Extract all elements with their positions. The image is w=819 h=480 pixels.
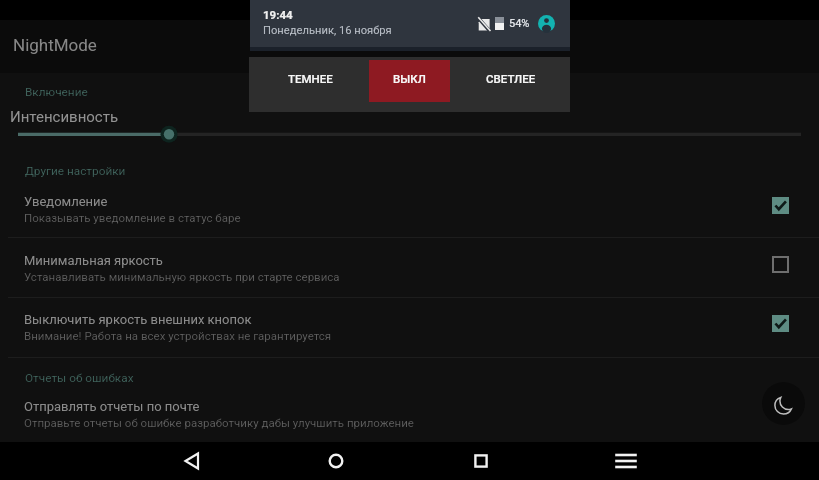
- staticText: 54%: [509, 17, 530, 30]
- staticText: Выключить яркость внешних кнопок: [24, 312, 252, 327]
- button[interactable]: Home: [317, 442, 355, 480]
- staticText: Отправьте отчеты об ошибке разработчику …: [24, 416, 414, 429]
- staticText: Внимание! Работа на всех устройствах не …: [24, 329, 332, 342]
- staticText: ТЕМНЕЕ: [288, 72, 333, 85]
- button[interactable]: Toggle night mode: [762, 382, 805, 425]
- button[interactable]: ВЫКЛ: [369, 60, 450, 102]
- button[interactable]: Menu: [607, 442, 645, 480]
- staticText: 19:44: [263, 8, 293, 21]
- button[interactable]: 19:44: [250, 0, 570, 47]
- button[interactable]: Интенсивность: [0, 104, 819, 146]
- staticText: Понедельник, 16 ноября: [263, 24, 392, 37]
- button[interactable]: Recents: [462, 442, 500, 480]
- staticText: Устанавливать минимальную яркость при ст…: [24, 270, 340, 283]
- button[interactable]: Выключить яркость внешних кнопок: [0, 293, 819, 337]
- button[interactable]: Минимальная яркость: [0, 234, 819, 278]
- button[interactable]: СВЕТЛЕЕ: [450, 57, 570, 112]
- button[interactable]: Уведомление: [0, 175, 819, 219]
- staticText: Отправлять отчеты по почте: [24, 399, 200, 414]
- staticText: Отчеты об ошибках: [25, 371, 134, 385]
- button[interactable]: Отправлять отчеты по почте: [0, 380, 819, 424]
- button[interactable]: Back: [173, 442, 211, 480]
- staticText: Интенсивность: [10, 108, 119, 126]
- staticText: Другие настройки: [25, 164, 126, 178]
- staticText: СВЕТЛЕЕ: [486, 72, 536, 85]
- staticText: NightMode: [13, 35, 97, 55]
- staticText: Минимальная яркость: [24, 253, 163, 268]
- staticText: Включение: [25, 85, 88, 99]
- staticText: Уведомление: [24, 194, 108, 209]
- staticText: Показывать уведомление в статус баре: [24, 211, 241, 224]
- button[interactable]: ТЕМНЕЕ: [249, 57, 369, 112]
- staticText: ВЫКЛ: [393, 72, 426, 85]
